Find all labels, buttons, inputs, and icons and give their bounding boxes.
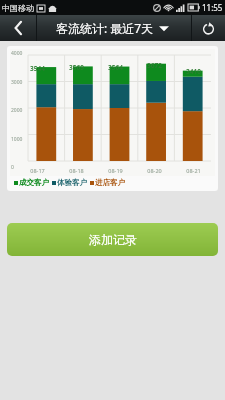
staticText: 08-18 xyxy=(69,167,84,174)
staticText: 成交客户 xyxy=(19,178,49,187)
staticText: 客流统计: 最近7天 xyxy=(56,20,154,36)
staticText: 3569 xyxy=(69,63,84,72)
staticText: 11:55 xyxy=(202,2,223,13)
staticText: 1000 xyxy=(11,136,23,143)
staticText: 08-21 xyxy=(186,167,201,174)
staticText: 中国移动 xyxy=(2,3,34,13)
staticText: 3410 xyxy=(186,67,201,76)
staticText: 体验客户 xyxy=(57,178,87,187)
button[interactable]: 添加记录 xyxy=(7,223,218,256)
button[interactable]: 客流统计: 最近7天 xyxy=(56,20,169,36)
staticText: 添加记录 xyxy=(89,232,137,247)
staticText: 4000 xyxy=(11,50,23,57)
button[interactable]: Refresh xyxy=(192,15,225,41)
staticText: 08-20 xyxy=(147,167,162,174)
staticText: 08-19 xyxy=(108,167,123,174)
staticText: 3000 xyxy=(11,79,23,86)
staticText: 0 xyxy=(11,164,14,171)
staticText: 进店客户 xyxy=(95,178,125,187)
staticText: 3564 xyxy=(108,63,123,72)
staticText: 08-17 xyxy=(30,167,45,174)
button[interactable]: Back xyxy=(0,15,36,41)
staticText: 3544 xyxy=(30,64,45,73)
staticText: 3672 xyxy=(147,61,162,70)
staticText: 2000 xyxy=(11,107,23,114)
